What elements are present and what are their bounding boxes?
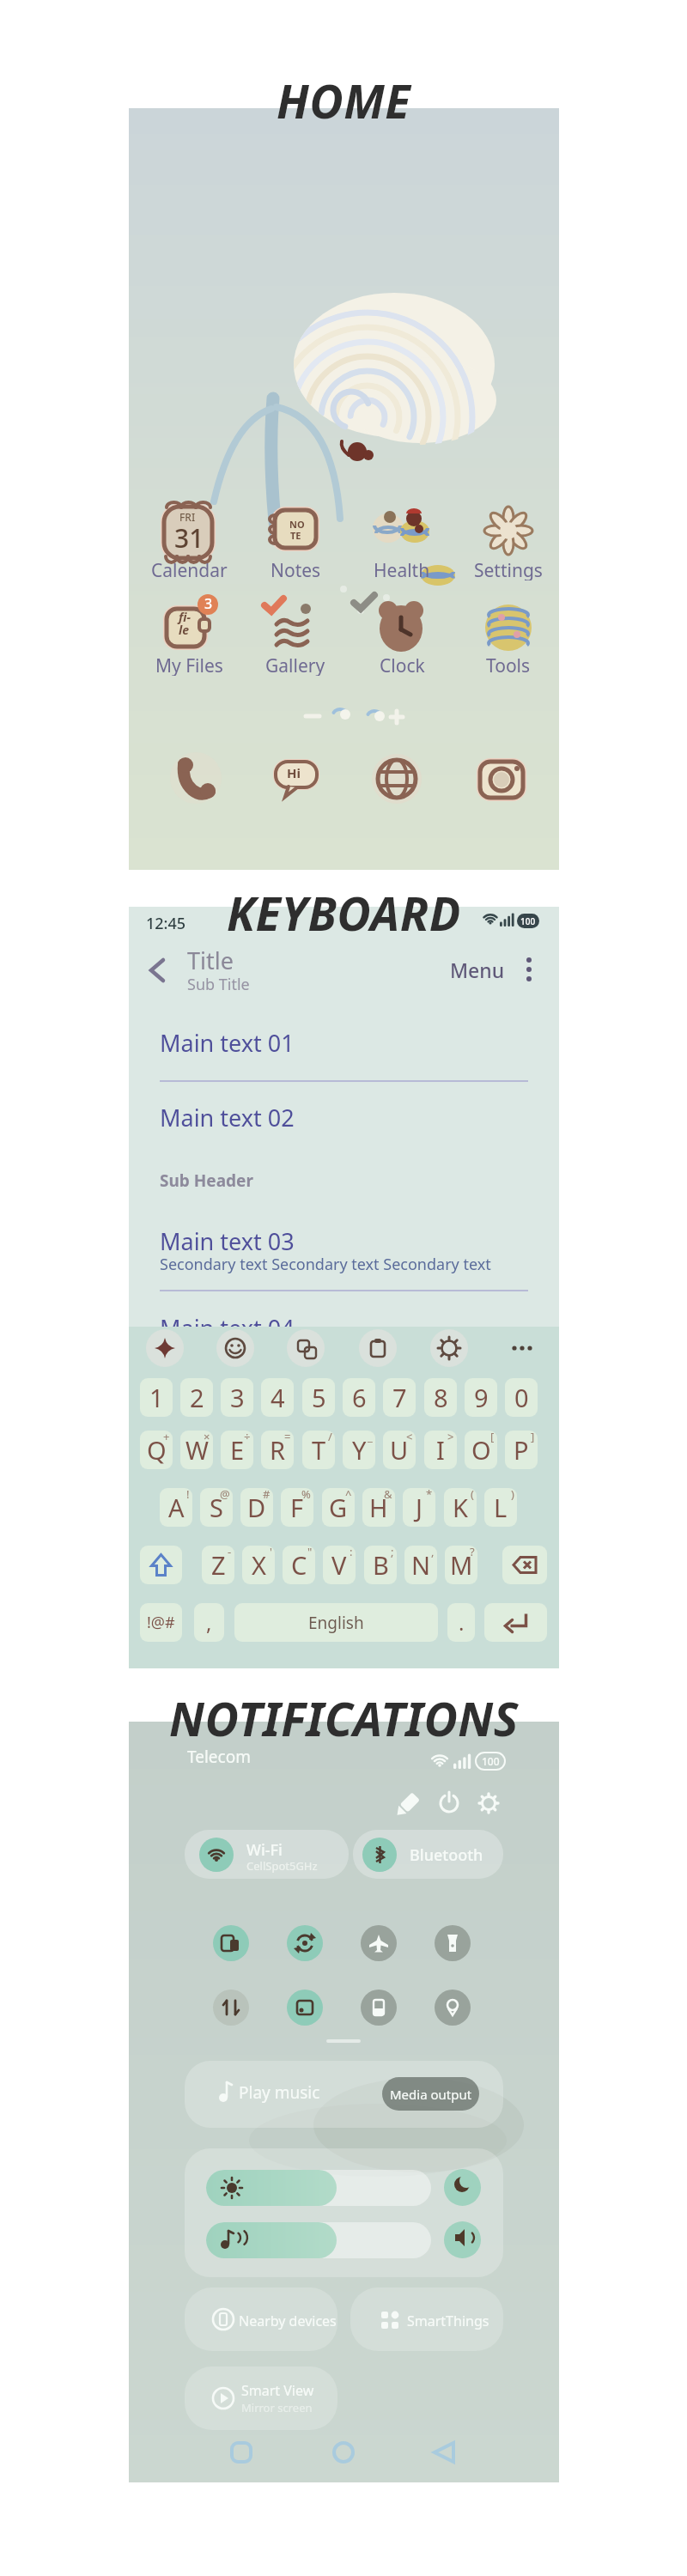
button[interactable] — [264, 501, 326, 563]
staticText: 3 — [230, 1381, 245, 1414]
button[interactable]: 7 — [383, 1378, 416, 1417]
button[interactable]: J — [403, 1488, 435, 1527]
button[interactable]: G — [322, 1488, 355, 1527]
button[interactable]: F — [281, 1488, 313, 1527]
button[interactable]: Smart View — [185, 2366, 337, 2430]
staticText: B — [373, 1548, 389, 1582]
button[interactable] — [158, 597, 220, 659]
button[interactable] — [194, 1603, 224, 1642]
button[interactable]: 1 — [140, 1378, 173, 1417]
button[interactable]: 9 — [465, 1378, 497, 1417]
staticText: Title — [187, 945, 234, 976]
button[interactable]: A — [160, 1488, 192, 1527]
button[interactable]: V — [323, 1546, 356, 1584]
button[interactable] — [361, 1925, 397, 1961]
button[interactable] — [484, 1603, 547, 1642]
button[interactable]: N — [404, 1546, 437, 1584]
button[interactable] — [287, 1990, 323, 2026]
button[interactable] — [477, 597, 539, 659]
staticText: ' — [270, 1546, 272, 1559]
button[interactable] — [471, 1785, 508, 1820]
button[interactable] — [371, 503, 433, 565]
button[interactable]: B — [364, 1546, 397, 1584]
button[interactable] — [158, 502, 220, 564]
button[interactable]: W — [180, 1431, 213, 1469]
staticText: : — [350, 1546, 353, 1559]
button[interactable] — [287, 1925, 323, 1961]
button[interactable]: L — [484, 1488, 517, 1527]
button[interactable] — [444, 2169, 481, 2206]
button[interactable] — [140, 1603, 182, 1642]
button[interactable] — [213, 1925, 249, 1961]
button[interactable]: Nearby devices — [185, 2287, 337, 2351]
button[interactable] — [475, 753, 526, 805]
button[interactable]: P — [505, 1431, 538, 1469]
button[interactable]: 8 — [424, 1378, 457, 1417]
button[interactable] — [206, 2222, 431, 2258]
button[interactable]: 0 — [505, 1378, 538, 1417]
button[interactable] — [213, 1990, 249, 2026]
button[interactable] — [502, 1546, 547, 1584]
button[interactable] — [234, 1603, 438, 1642]
button[interactable]: E — [221, 1431, 253, 1469]
button[interactable]: O — [465, 1431, 497, 1469]
button[interactable] — [435, 1990, 471, 2026]
staticText: N — [411, 1548, 431, 1582]
staticText: . — [459, 1608, 465, 1637]
button[interactable]: K — [444, 1488, 477, 1527]
button[interactable] — [444, 2221, 481, 2258]
button[interactable] — [170, 752, 222, 804]
staticText: = — [284, 1431, 291, 1444]
staticText: ! — [186, 1488, 190, 1502]
button[interactable] — [447, 1603, 475, 1642]
button[interactable]: T — [302, 1431, 335, 1469]
button[interactable] — [206, 2170, 431, 2206]
staticText: G — [329, 1491, 348, 1524]
button[interactable]: M — [445, 1546, 477, 1584]
staticText: Sub Header — [160, 1170, 253, 1192]
button[interactable]: C — [283, 1546, 315, 1584]
button[interactable]: Y — [343, 1431, 375, 1469]
button[interactable]: 2 — [180, 1378, 213, 1417]
button[interactable]: X — [242, 1546, 275, 1584]
button[interactable] — [361, 1990, 397, 2026]
button[interactable]: U — [383, 1431, 416, 1469]
button[interactable] — [371, 753, 423, 805]
button[interactable] — [325, 2433, 362, 2471]
button[interactable]: 3 — [221, 1378, 253, 1417]
button[interactable] — [140, 1546, 182, 1584]
button[interactable] — [222, 2433, 260, 2471]
button[interactable]: Wi-Fi — [185, 1830, 349, 1879]
button[interactable]: I — [424, 1431, 457, 1469]
button[interactable] — [141, 953, 179, 991]
button[interactable] — [371, 597, 433, 659]
button[interactable] — [392, 1785, 429, 1820]
button[interactable] — [425, 2433, 463, 2471]
button[interactable] — [264, 598, 326, 660]
button[interactable]: Q — [140, 1431, 173, 1469]
button[interactable]: 6 — [343, 1378, 375, 1417]
button[interactable]: Play music — [185, 2061, 503, 2128]
button[interactable]: 4 — [261, 1378, 294, 1417]
button[interactable] — [270, 752, 321, 804]
staticText: Gallery — [265, 653, 325, 676]
button[interactable]: SmartThings — [350, 2287, 503, 2351]
button[interactable]: R — [261, 1431, 294, 1469]
button[interactable]: H — [362, 1488, 395, 1527]
button[interactable] — [477, 501, 539, 563]
button[interactable] — [431, 1785, 469, 1820]
button[interactable]: Media output — [382, 2077, 479, 2111]
button[interactable]: S — [200, 1488, 233, 1527]
button[interactable] — [435, 1925, 471, 1961]
staticText: Calendar — [151, 558, 228, 580]
button[interactable]: 5 — [302, 1378, 335, 1417]
button[interactable]: Menu — [438, 950, 507, 984]
staticText: Settings — [474, 558, 543, 580]
button[interactable]: D — [240, 1488, 273, 1527]
staticText: - — [228, 1546, 232, 1559]
staticText: W — [185, 1433, 209, 1467]
staticText: Main text 03 — [160, 1225, 295, 1257]
staticText: Telecom — [187, 1746, 251, 1768]
button[interactable]: Bluetooth — [353, 1830, 503, 1879]
button[interactable]: Z — [202, 1546, 234, 1584]
